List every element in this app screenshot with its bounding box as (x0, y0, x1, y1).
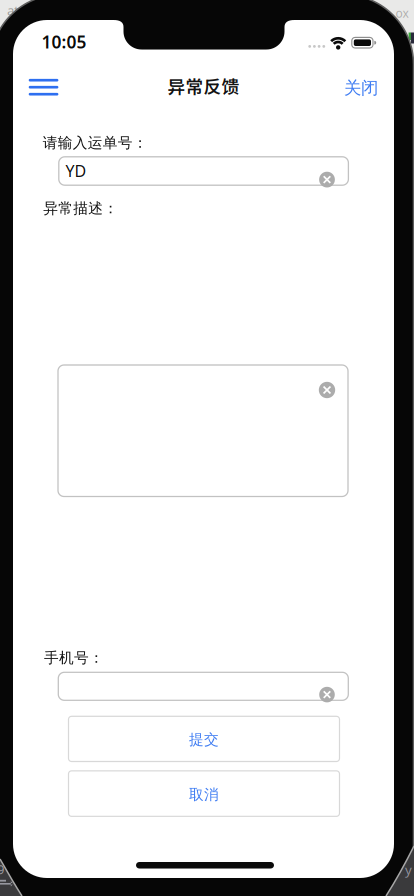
staticText: YD (65, 160, 86, 181)
staticText: 提交 (189, 731, 219, 749)
staticText: 取消 (189, 786, 219, 804)
staticText: 请输入运单号： (43, 134, 148, 152)
button[interactable]: 提交 (68, 716, 339, 761)
staticText: 10:05 (41, 30, 86, 53)
staticText: ox (395, 5, 408, 21)
button[interactable]: Clear text (318, 381, 336, 399)
staticText: 9 (0, 861, 4, 877)
staticText: atr (7, 1, 25, 19)
staticText: 关闭 (344, 77, 378, 99)
button[interactable]: Clear text (318, 171, 336, 188)
staticText: 手机号： (44, 649, 104, 667)
button[interactable]: 关闭 (344, 77, 378, 99)
staticText: 异常描述： (43, 199, 118, 217)
button[interactable]: 取消 (68, 771, 339, 816)
button[interactable]: Menu (29, 79, 58, 96)
staticText: 异常反馈 (167, 73, 239, 98)
button[interactable]: Clear text (318, 686, 336, 703)
staticText: y (405, 861, 412, 878)
